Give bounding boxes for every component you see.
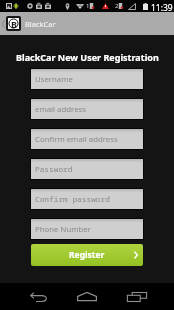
button[interactable]: Password xyxy=(31,159,143,179)
staticText: BlackCar New User Registration xyxy=(16,51,159,63)
button[interactable]: Confirm password xyxy=(31,189,143,209)
staticText: Phone Number xyxy=(35,224,91,235)
button[interactable]: Navigate up xyxy=(0,12,6,35)
staticText: 1 xyxy=(86,2,90,10)
staticText: Username xyxy=(35,74,73,85)
staticText: Password xyxy=(35,164,73,175)
staticText: B xyxy=(11,18,17,29)
staticText: Register xyxy=(69,249,105,261)
button[interactable]: Confirm email address xyxy=(31,129,143,149)
staticText: Confirm email address xyxy=(35,134,118,145)
staticText: BlackCar xyxy=(25,19,56,29)
button[interactable]: Home xyxy=(65,283,109,310)
staticText: Confirm password xyxy=(35,194,110,205)
button[interactable]: Username xyxy=(31,69,143,89)
staticText: 11:39 xyxy=(151,2,173,14)
staticText: 2 xyxy=(115,2,119,10)
button[interactable]: Register xyxy=(31,244,143,266)
button[interactable]: Recent apps xyxy=(115,283,159,310)
staticText: email address xyxy=(35,104,87,115)
button[interactable]: Back xyxy=(17,283,61,310)
button[interactable]: Phone Number xyxy=(31,219,143,239)
button[interactable]: email address xyxy=(31,99,143,119)
